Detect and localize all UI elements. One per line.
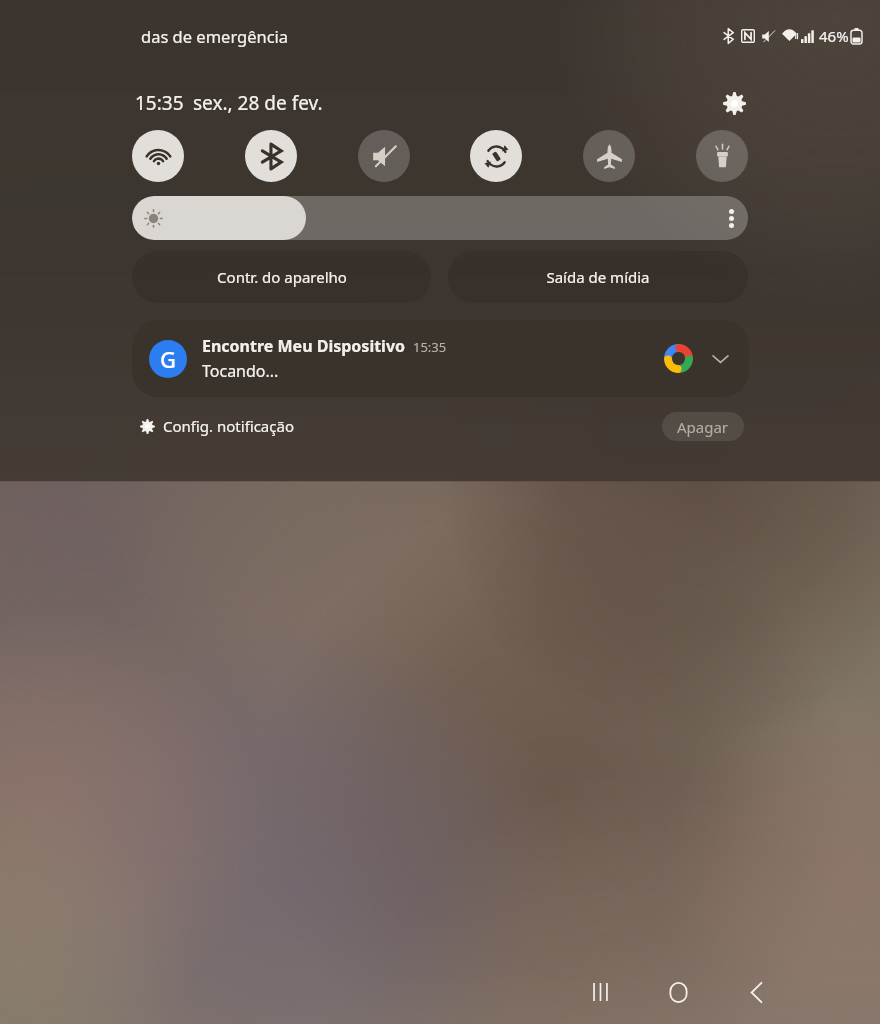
staticText: 15:35 bbox=[135, 90, 184, 116]
staticText: Encontre Meu Dispositivo bbox=[202, 335, 406, 357]
staticText: Contr. do aparelho bbox=[217, 267, 347, 287]
button[interactable]: Wi-Fi bbox=[132, 130, 184, 182]
button[interactable]: Saída de mídia bbox=[448, 251, 748, 303]
button[interactable]: Apagar bbox=[662, 412, 744, 441]
button[interactable]: Flashlight bbox=[696, 130, 748, 182]
button[interactable]: Back bbox=[728, 964, 784, 1020]
button[interactable]: Bluetooth bbox=[245, 130, 297, 182]
button[interactable]: Expand bbox=[705, 344, 735, 374]
staticText: Config. notificação bbox=[163, 416, 294, 436]
button[interactable]: Recent apps bbox=[572, 964, 628, 1020]
staticText: Apagar bbox=[677, 417, 729, 437]
button[interactable]: Settings bbox=[714, 86, 754, 120]
button[interactable]: Home bbox=[650, 964, 706, 1020]
staticText: 15:35 bbox=[413, 338, 447, 356]
staticText: Tocando... bbox=[202, 360, 279, 382]
button[interactable]: Config. notificação bbox=[136, 412, 298, 440]
button[interactable]: G bbox=[132, 320, 749, 397]
button[interactable]: Contr. do aparelho bbox=[132, 251, 431, 303]
button[interactable]: Sound off bbox=[358, 130, 410, 182]
button[interactable]: Brightness bbox=[132, 196, 748, 240]
staticText: sex., 28 de fev. bbox=[193, 90, 323, 116]
staticText: G bbox=[160, 344, 176, 374]
button[interactable]: Airplane mode bbox=[583, 130, 635, 182]
staticText: 46% bbox=[819, 26, 849, 46]
staticText: Saída de mídia bbox=[546, 267, 650, 287]
button[interactable]: Auto rotate bbox=[470, 130, 522, 182]
staticText: das de emergência bbox=[141, 25, 289, 47]
